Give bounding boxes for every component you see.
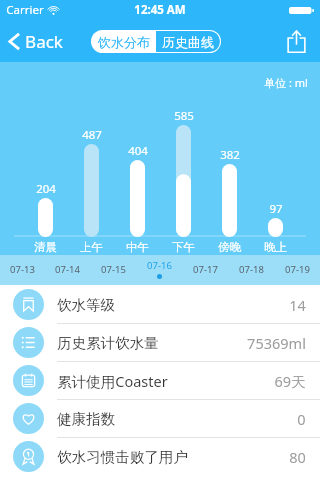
button[interactable]: Share — [280, 25, 312, 57]
staticText: 饮水分布 — [98, 34, 150, 50]
staticText: 07-19 — [285, 263, 310, 276]
button[interactable]: 07-15 — [90, 255, 136, 285]
button[interactable]: 07-13 — [0, 255, 45, 285]
button[interactable]: 07-18 — [228, 255, 274, 285]
button[interactable]: 饮水等级 — [0, 285, 320, 323]
staticText: 404 — [128, 143, 148, 159]
staticText: 历史曲线 — [162, 34, 214, 50]
button[interactable]: 历史累计饮水量 — [0, 323, 320, 361]
staticText: 历史累计饮水量 — [57, 334, 159, 352]
staticText: 07-14 — [55, 263, 80, 276]
staticText: 12:45 AM — [134, 2, 186, 18]
staticText: 80 — [289, 447, 306, 467]
staticText: 傍晚 — [218, 240, 241, 254]
staticText: 14 — [289, 295, 306, 315]
staticText: 07-17 — [193, 263, 218, 276]
button[interactable]: 07-16 — [136, 255, 182, 285]
staticText: 204 — [36, 181, 56, 197]
staticText: 07-13 — [10, 263, 35, 276]
staticText: 75369ml — [247, 333, 306, 353]
staticText: 0 — [297, 409, 306, 429]
staticText: 清晨 — [34, 240, 57, 254]
staticText: 上午 — [80, 240, 103, 254]
staticText: 07-16 — [147, 259, 172, 272]
button[interactable]: 累计使用Coaster — [0, 361, 320, 399]
button[interactable]: 健康指数 — [0, 399, 320, 437]
staticText: 97 — [269, 201, 283, 217]
staticText: 晚上 — [264, 240, 287, 254]
staticText: 健康指数 — [57, 410, 115, 428]
button[interactable]: 历史曲线 — [156, 31, 220, 52]
staticText: 382 — [220, 147, 240, 163]
button[interactable]: 07-19 — [274, 255, 320, 285]
staticText: 69天 — [274, 371, 306, 391]
staticText: 饮水等级 — [57, 296, 115, 314]
button[interactable]: Back — [0, 24, 75, 59]
staticText: 累计使用Coaster — [57, 371, 168, 391]
staticText: 585 — [174, 108, 194, 124]
staticText: 487 — [82, 127, 102, 143]
button[interactable]: 饮水分布 — [92, 31, 156, 52]
button[interactable]: 07-17 — [182, 255, 228, 285]
button[interactable]: 饮水习惯击败了用户 — [0, 437, 320, 475]
staticText: 饮水习惯击败了用户 — [57, 448, 188, 466]
staticText: 下午 — [172, 240, 195, 254]
staticText: 单位 : ml — [264, 75, 308, 90]
staticText: 07-15 — [101, 263, 126, 276]
staticText: Back — [25, 30, 63, 53]
staticText: 中午 — [126, 240, 149, 254]
staticText: Carrier — [6, 2, 44, 18]
button[interactable]: 07-14 — [45, 255, 90, 285]
staticText: 07-18 — [239, 263, 264, 276]
